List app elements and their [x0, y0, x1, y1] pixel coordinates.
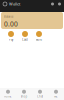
button[interactable]: Me: [48, 90, 64, 98]
button[interactable]: Card: [18, 31, 32, 41]
button[interactable]: Home: [0, 90, 16, 98]
staticText: Balance: [4, 15, 14, 18]
button[interactable]: Chat: [32, 90, 48, 98]
staticText: Pay: [9, 38, 13, 41]
staticText: Me: [54, 95, 58, 98]
staticText: Home: [4, 95, 12, 98]
staticText: Card: [22, 38, 28, 41]
button[interactable]: Shop: [16, 90, 32, 98]
staticText: Shop: [20, 95, 27, 98]
button[interactable]: Pay: [4, 31, 18, 41]
staticText: More: [35, 38, 42, 41]
staticText: Wallet: [9, 1, 20, 7]
staticText: Chat: [37, 95, 43, 98]
button[interactable]: More: [32, 31, 46, 41]
staticText: 0.00: [4, 19, 18, 28]
